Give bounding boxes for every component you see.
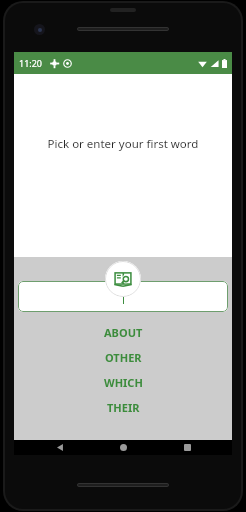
button[interactable]: Look up word	[105, 261, 141, 297]
staticText: Pick or enter your first word	[14, 136, 232, 152]
staticText: ABOUT	[104, 325, 143, 340]
button[interactable]: Recent apps	[169, 440, 205, 455]
button[interactable]: THEIR	[14, 395, 232, 420]
button[interactable]: OTHER	[14, 345, 232, 370]
button[interactable]: Home	[105, 440, 141, 455]
button[interactable]: Back	[42, 440, 78, 455]
staticText: WHICH	[104, 375, 143, 390]
button[interactable]	[18, 281, 228, 312]
staticText: THEIR	[107, 400, 140, 415]
staticText: OTHER	[105, 350, 142, 365]
button[interactable]: WHICH	[14, 370, 232, 395]
button[interactable]: ABOUT	[14, 320, 232, 345]
staticText: 11:20	[19, 57, 43, 69]
